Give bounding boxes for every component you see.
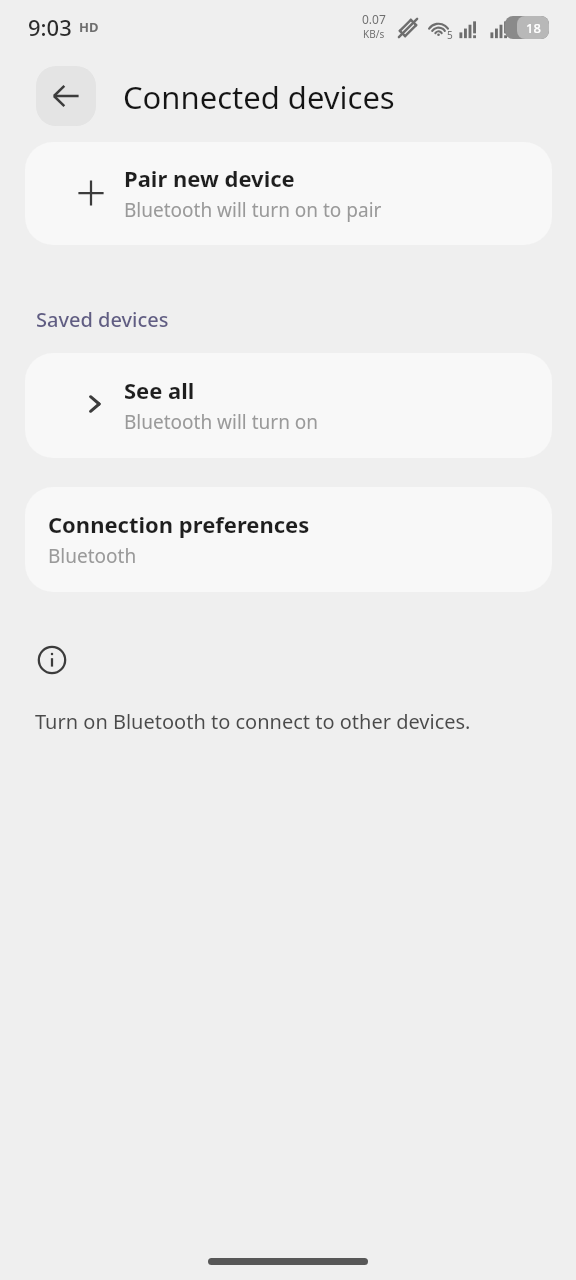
staticText: Bluetooth will turn on to pair: [124, 197, 382, 223]
staticText: Bluetooth: [48, 543, 137, 569]
staticText: 0.07: [362, 11, 386, 27]
other: Information: [37, 645, 67, 675]
staticText: 9:03: [28, 12, 72, 42]
button[interactable]: See all saved devices: [25, 353, 552, 458]
staticText: HD: [79, 18, 99, 36]
staticText: 5: [447, 28, 453, 42]
staticText: Bluetooth will turn on: [124, 409, 319, 435]
other: See all saved devices: [82, 391, 108, 417]
staticText: Pair new device: [124, 163, 295, 193]
button[interactable]: Pair new device: [25, 142, 552, 245]
staticText: Connection preferences: [48, 509, 310, 539]
staticText: Turn on Bluetooth to connect to other de…: [35, 708, 471, 735]
other: Pair new device: [76, 178, 106, 208]
staticText: 18: [526, 19, 541, 37]
button[interactable]: Back: [36, 66, 96, 126]
staticText: Connected devices: [123, 76, 395, 118]
staticText: See all: [124, 375, 195, 405]
button[interactable]: Connection preferences: [25, 487, 552, 592]
staticText: KB/s: [363, 27, 385, 41]
staticText: Saved devices: [36, 306, 169, 333]
